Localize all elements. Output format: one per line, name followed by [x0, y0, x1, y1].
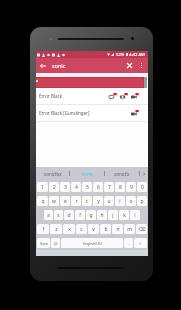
staticText: 3	[64, 184, 67, 191]
button[interactable]: w	[49, 196, 59, 206]
button[interactable]: 6	[93, 182, 103, 192]
staticText: 1	[41, 184, 44, 191]
staticText: x	[68, 226, 71, 233]
button[interactable]: .	[124, 238, 133, 248]
staticText: t	[86, 198, 88, 205]
button[interactable]: More options	[136, 60, 147, 71]
staticText: sonic	[82, 171, 93, 177]
staticText: 4:42 AM	[129, 52, 145, 58]
staticText: u	[107, 198, 111, 205]
button[interactable]: q	[37, 196, 48, 206]
button[interactable]: d	[64, 210, 74, 220]
button[interactable]: 1	[37, 182, 48, 192]
staticText: English(US)	[83, 241, 102, 246]
button[interactable]: 8	[115, 182, 125, 192]
button[interactable]: 7	[104, 182, 114, 192]
staticText: 4	[75, 184, 78, 191]
staticText: i	[119, 198, 121, 205]
staticText: 6	[97, 184, 100, 191]
button[interactable]: e	[60, 196, 70, 206]
staticText: 9	[130, 184, 133, 191]
button[interactable]: x	[63, 224, 75, 234]
staticText: d	[67, 212, 71, 219]
button[interactable]: z	[50, 224, 62, 234]
button[interactable]: o	[126, 196, 136, 206]
button[interactable]: 3	[60, 182, 70, 192]
staticText: sonic	[52, 62, 66, 69]
staticText: r	[75, 198, 78, 205]
button[interactable]: y	[93, 196, 103, 206]
staticText: b	[104, 226, 108, 233]
button[interactable]: sonicfo	[105, 167, 139, 180]
button[interactable]: Action	[131, 93, 139, 100]
staticText: j	[112, 212, 114, 219]
button[interactable]: ⌫	[136, 224, 147, 234]
button[interactable]: v	[88, 224, 99, 234]
staticText: Error Black [Gunslinger]	[39, 110, 90, 116]
button[interactable]: p	[137, 196, 147, 206]
button[interactable]: English(US)	[61, 238, 123, 248]
button[interactable]: 0	[137, 182, 147, 192]
staticText: y	[97, 198, 100, 205]
button[interactable]: i	[115, 196, 125, 206]
staticText: a	[47, 212, 50, 219]
button[interactable]: Clear search	[123, 59, 136, 72]
button[interactable]: c	[76, 224, 87, 234]
button[interactable]: m	[124, 224, 135, 234]
button[interactable]: Sym	[37, 238, 50, 248]
button[interactable]: a	[44, 210, 53, 220]
button[interactable]: Error Black	[36, 88, 148, 104]
staticText: sonicfox	[44, 171, 62, 177]
staticText: m	[127, 226, 132, 233]
button[interactable]: s	[54, 210, 63, 220]
staticText: 0	[141, 184, 144, 191]
staticText: 7	[108, 184, 111, 191]
staticText: ☺	[53, 241, 58, 246]
button[interactable]: ⌕	[134, 238, 147, 248]
button[interactable]: k	[119, 210, 129, 220]
staticText: Sym	[40, 241, 48, 246]
button[interactable]: 4	[71, 182, 81, 192]
staticText: o	[129, 198, 133, 205]
button[interactable]: b	[100, 224, 111, 234]
staticText: 52%	[116, 52, 125, 58]
staticText: ↑	[41, 226, 46, 232]
button[interactable]: t	[82, 196, 92, 206]
staticText: n	[116, 226, 120, 233]
staticText: 5	[86, 184, 89, 191]
button[interactable]	[36, 77, 144, 88]
button[interactable]: sonic	[70, 167, 104, 180]
button[interactable]: j	[108, 210, 118, 220]
button[interactable]: g	[86, 210, 96, 220]
button[interactable]: f	[75, 210, 85, 220]
staticText: s	[57, 212, 60, 219]
button[interactable]: h	[97, 210, 107, 220]
staticText: 8	[119, 184, 122, 191]
button[interactable]: l	[130, 210, 140, 220]
button[interactable]: 2	[49, 182, 59, 192]
button[interactable]: sonicfox	[36, 167, 69, 180]
button[interactable]: Action	[131, 110, 139, 117]
staticText: ⌕	[139, 241, 142, 246]
staticText: z	[55, 226, 58, 233]
staticText: w	[52, 198, 56, 205]
staticText: 2	[53, 184, 56, 191]
button[interactable]: 5	[82, 182, 92, 192]
staticText: ⌫	[138, 226, 146, 232]
button[interactable]: ☺	[51, 238, 60, 248]
button[interactable]: More suggestions	[140, 167, 148, 180]
staticText: v	[92, 226, 95, 233]
button[interactable]: u	[104, 196, 114, 206]
button[interactable]: n	[112, 224, 123, 234]
staticText: p	[140, 198, 144, 205]
button[interactable]: r	[71, 196, 81, 206]
button[interactable]: ↑	[37, 224, 49, 234]
button[interactable]: Back	[36, 59, 50, 73]
button[interactable]: 9	[126, 182, 136, 192]
button[interactable]: Action	[109, 93, 117, 100]
button[interactable]: Action	[120, 93, 128, 100]
staticText: l	[134, 212, 136, 219]
staticText: sonicfo	[114, 171, 130, 177]
staticText: Error Black	[39, 93, 63, 99]
button[interactable]: Error Black [Gunslinger]	[36, 105, 148, 121]
